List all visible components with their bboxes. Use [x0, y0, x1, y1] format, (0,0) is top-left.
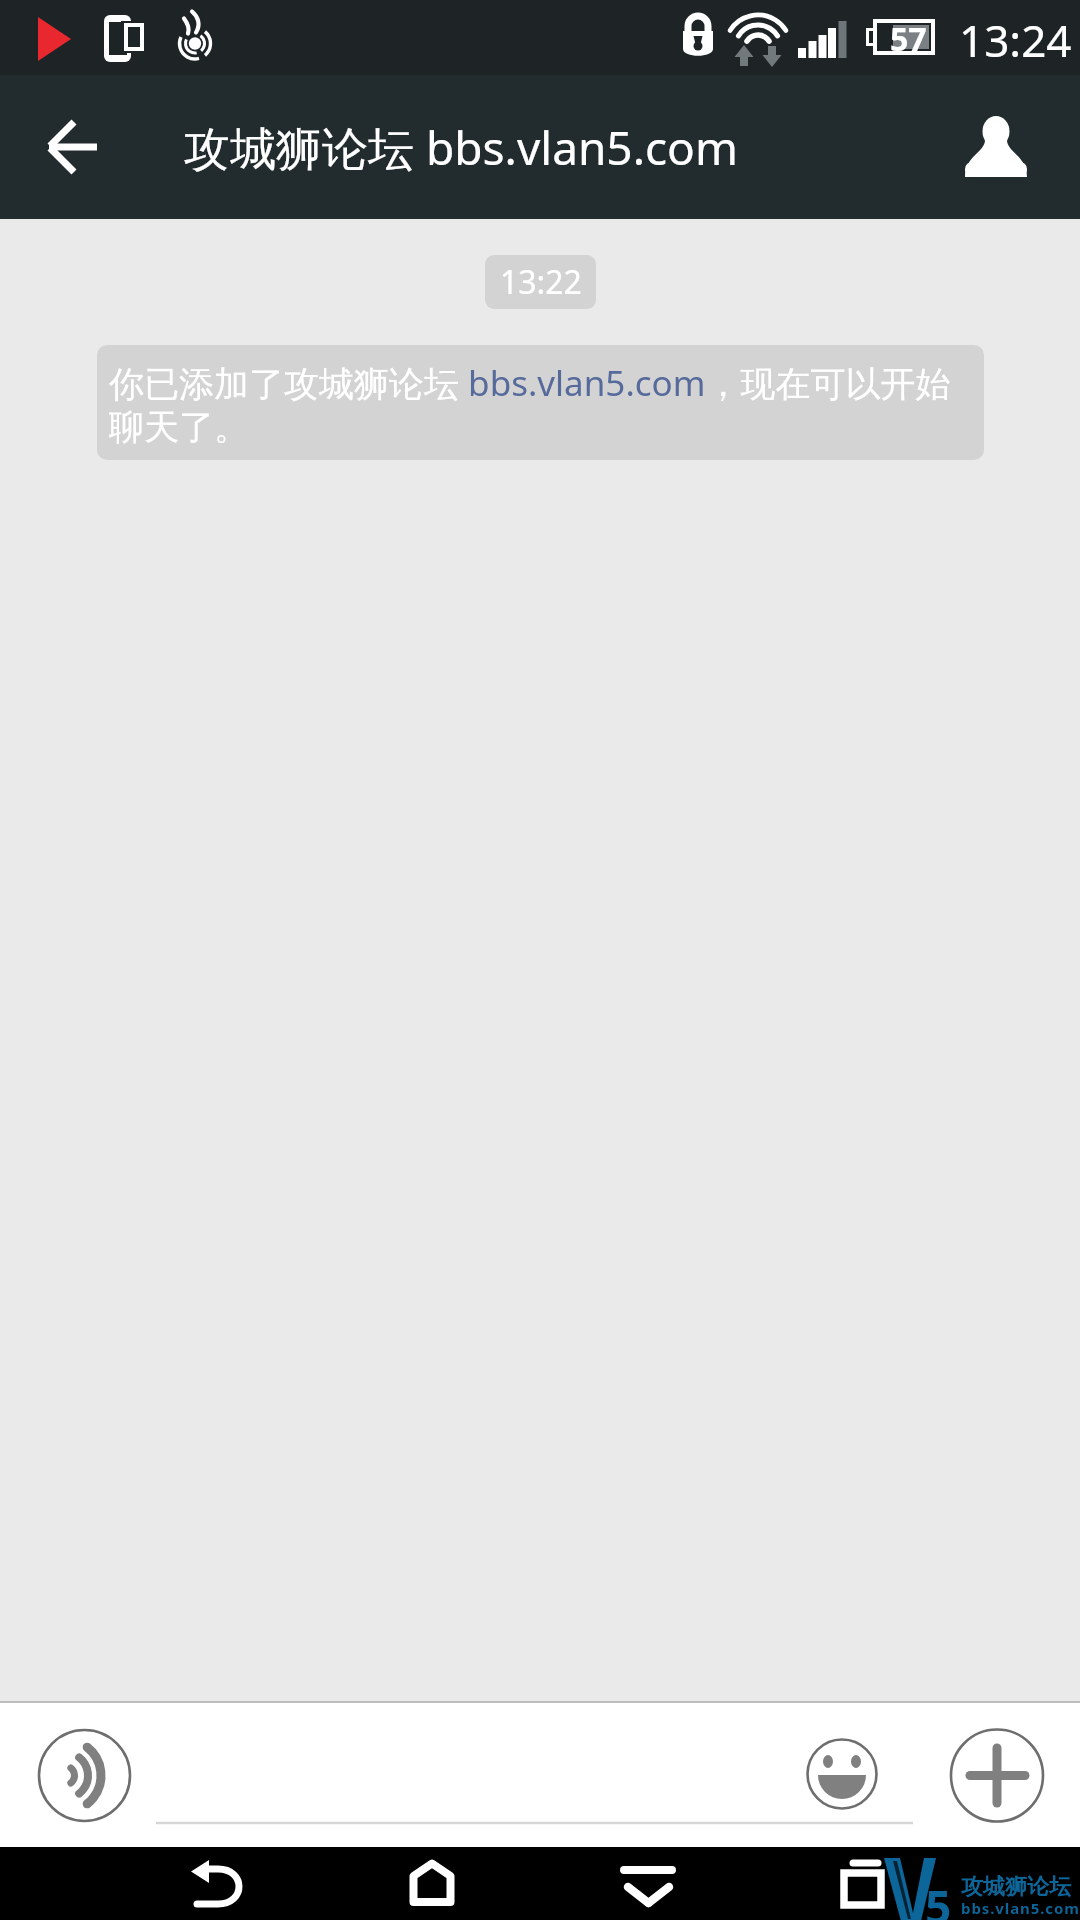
staticText: 13:24: [959, 10, 1072, 70]
button[interactable]: Back: [0, 75, 146, 219]
button[interactable]: Profile: [965, 75, 1045, 219]
staticText: 攻城狮论坛 bbs.vlan5.com: [184, 116, 738, 179]
staticText: 5: [925, 1875, 952, 1920]
staticText: 57: [890, 17, 927, 61]
button[interactable]: Home: [390, 1847, 480, 1920]
button[interactable]: Hide keyboard: [605, 1847, 695, 1920]
button[interactable]: More: [950, 1729, 1045, 1824]
button[interactable]: 你已添加了攻城狮论坛 bbs.vlan5.com，现在可以开始聊天了。: [97, 345, 984, 460]
staticText: 攻城狮论坛: [961, 1873, 1071, 1901]
button[interactable]: Voice input: [38, 1729, 131, 1822]
button[interactable]: Emoji: [806, 1739, 878, 1811]
staticText: 你已添加了攻城狮论坛 bbs.vlan5.com，现在可以开始聊天了。: [109, 359, 974, 450]
staticText: 13:22: [500, 260, 582, 304]
button[interactable]: Back: [160, 1847, 280, 1920]
staticText: bbs.vlan5.com: [961, 1898, 1080, 1918]
button[interactable]: Recent apps: [825, 1847, 915, 1920]
